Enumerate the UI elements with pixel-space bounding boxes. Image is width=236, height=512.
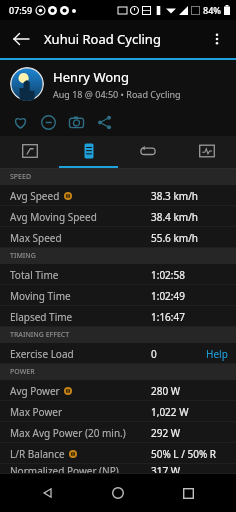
button[interactable]: Recents <box>173 478 203 508</box>
staticText: 55.6 km/h <box>151 231 199 245</box>
button[interactable]: Comment <box>34 108 62 136</box>
button[interactable]: Max Speed <box>0 227 236 248</box>
staticText: 1:02:58 <box>151 268 185 282</box>
button[interactable]: L/R Balance <box>0 443 236 464</box>
button[interactable]: Avg Power <box>0 380 236 401</box>
button[interactable]: Home <box>103 478 133 508</box>
button[interactable]: Back <box>6 24 36 54</box>
staticText: Total Time <box>10 268 59 282</box>
staticText: 280 W <box>151 384 181 398</box>
staticText: Elapsed Time <box>10 310 73 324</box>
staticText: Henry Wong <box>53 68 130 86</box>
staticText: Aug 18 @ 04:50 • Road Cycling <box>53 88 181 100</box>
staticText: Normalized Power (NP) <box>10 464 119 474</box>
button[interactable]: Help <box>206 347 228 361</box>
staticText: 1:16:47 <box>151 310 185 324</box>
staticText: 07:59 <box>9 4 33 16</box>
staticText: L/R Balance <box>10 447 65 461</box>
button[interactable]: Avg Speed <box>0 185 236 206</box>
button[interactable]: Avg Moving Speed <box>0 206 236 227</box>
button[interactable]: More options <box>202 24 232 54</box>
staticText: Exercise Load <box>10 347 74 361</box>
button[interactable]: Exercise Load <box>0 343 236 364</box>
staticText: 38.4 km/h <box>151 210 199 224</box>
staticText: 317 W <box>151 464 181 474</box>
button[interactable]: Details <box>59 136 118 166</box>
staticText: 38.3 km/h <box>151 189 199 203</box>
staticText: SPEED <box>10 172 32 182</box>
staticText: Max Speed <box>10 231 62 245</box>
staticText: Max Power <box>10 405 63 419</box>
staticText: Moving Time <box>10 289 71 303</box>
button[interactable]: Laps <box>118 136 177 166</box>
button[interactable]: Photos <box>62 108 90 136</box>
staticText: 84% <box>203 4 221 16</box>
staticText: Avg Speed <box>10 189 60 203</box>
button[interactable]: Normalized Power (NP) <box>0 464 236 474</box>
staticText: 50% L / 50% R <box>151 447 217 461</box>
button[interactable]: Map <box>0 136 59 166</box>
staticText: TRAINING EFFECT <box>10 330 70 340</box>
staticText: 1:02:49 <box>151 289 185 303</box>
staticText: 292 W <box>151 426 181 440</box>
staticText: Max Avg Power (20 min.) <box>10 426 126 440</box>
button[interactable]: Henry Wong <box>0 60 236 108</box>
button[interactable]: Moving Time <box>0 285 236 306</box>
button[interactable]: Max Power <box>0 401 236 422</box>
staticText: Xuhui Road Cycling <box>44 30 161 48</box>
staticText: Avg Moving Speed <box>10 210 97 224</box>
staticText: 0 <box>151 347 157 361</box>
staticText: Avg Power <box>10 384 60 398</box>
staticText: POWER <box>10 367 35 377</box>
staticText: TIMING <box>10 251 36 261</box>
button[interactable]: Share <box>90 108 118 136</box>
button[interactable]: Like <box>6 108 34 136</box>
button[interactable]: Back <box>33 478 63 508</box>
staticText: 1,022 W <box>151 405 189 419</box>
button[interactable]: Total Time <box>0 264 236 285</box>
button[interactable]: Max Avg Power (20 min.) <box>0 422 236 443</box>
button[interactable]: Charts <box>177 136 236 166</box>
button[interactable]: Elapsed Time <box>0 306 236 327</box>
staticText: Help <box>206 347 228 361</box>
